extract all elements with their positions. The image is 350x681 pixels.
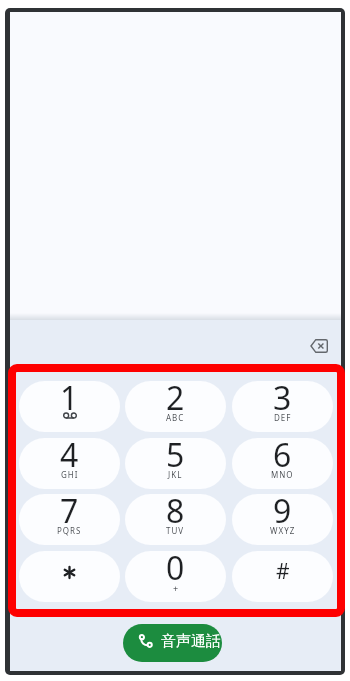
staticText: 9 (273, 494, 292, 533)
button[interactable]: 8 (125, 494, 226, 545)
button[interactable]: 4 (19, 438, 120, 489)
staticText: 4 (60, 438, 79, 477)
staticText: ABC (166, 412, 185, 423)
staticText: 5 (166, 438, 185, 477)
staticText: MNO (271, 469, 294, 480)
button[interactable]: 6 (232, 438, 333, 489)
staticText: PQRS (57, 525, 82, 536)
staticText: 2 (166, 381, 185, 420)
staticText: + (173, 582, 179, 594)
staticText: DEF (274, 412, 292, 423)
button[interactable]: 3 (232, 381, 333, 432)
staticText: 1 (60, 381, 79, 420)
button[interactable]: 2 (125, 381, 226, 432)
staticText: 0 (166, 551, 185, 590)
staticText: TUV (166, 525, 185, 536)
button[interactable] (307, 336, 331, 356)
button[interactable]: 音声通話 (123, 624, 222, 662)
button[interactable]: 7 (19, 494, 120, 545)
button[interactable]: 9 (232, 494, 333, 545)
button[interactable]: 0 (125, 551, 226, 602)
staticText: GHI (61, 469, 79, 480)
staticText: 音声通話 (161, 632, 221, 651)
button[interactable]: 5 (125, 438, 226, 489)
button[interactable]: # (232, 551, 333, 602)
staticText: 3 (273, 381, 292, 420)
staticText: JKL (168, 469, 183, 480)
staticText: # (276, 557, 290, 586)
staticText: 8 (166, 494, 185, 533)
staticText: WXYZ (270, 525, 296, 536)
button[interactable] (19, 551, 120, 602)
staticText: 7 (60, 494, 79, 533)
button[interactable]: 1 (19, 381, 120, 432)
staticText: 6 (273, 438, 292, 477)
